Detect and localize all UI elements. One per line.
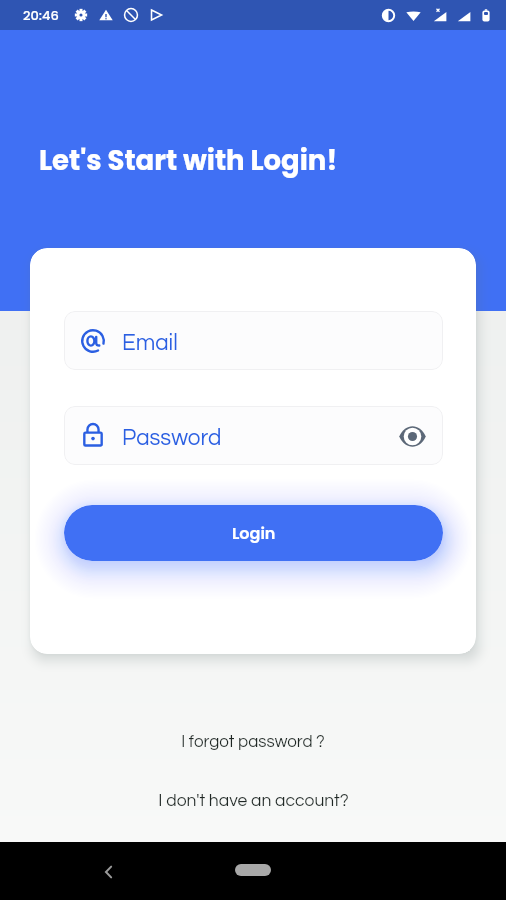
staticText: I forgot password ? — [181, 733, 325, 751]
button[interactable]: I forgot password ? — [0, 726, 506, 758]
button[interactable]: Home — [235, 864, 271, 876]
staticText: 20:46 — [23, 6, 59, 24]
staticText: Let's Start with Login! — [39, 141, 338, 179]
staticText: Login — [232, 522, 276, 544]
staticText: Email — [122, 332, 178, 355]
button[interactable]: Show password — [390, 414, 434, 458]
button[interactable]: Email — [64, 311, 443, 370]
staticText: Password — [122, 427, 222, 450]
button[interactable]: Back — [88, 851, 130, 893]
button[interactable]: Password — [64, 406, 443, 465]
staticText: I don't have an account? — [158, 792, 349, 810]
button[interactable]: Login — [64, 505, 443, 561]
button[interactable]: I don't have an account? — [0, 785, 506, 817]
